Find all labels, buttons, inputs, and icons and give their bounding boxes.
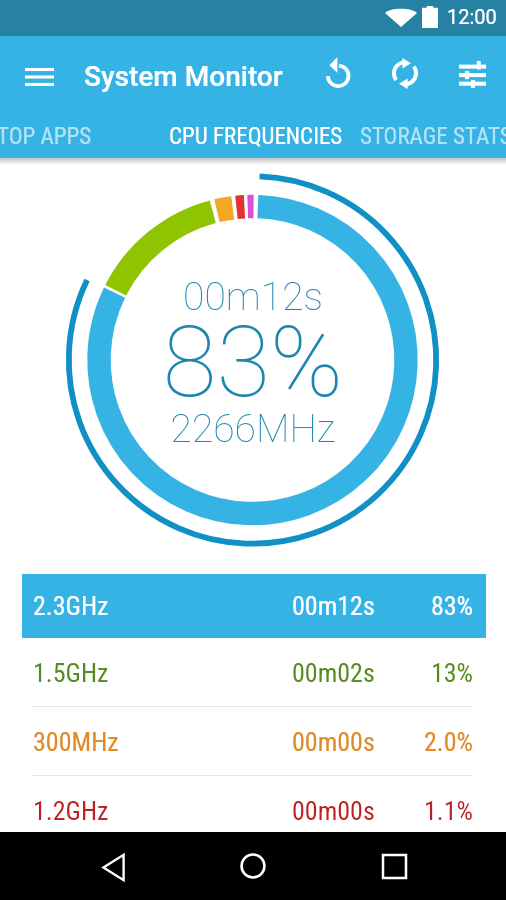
button[interactable]: Reset bbox=[308, 36, 367, 104]
staticText: 1.5GHz bbox=[33, 658, 109, 688]
staticText: 1.2GHz bbox=[33, 796, 109, 826]
button[interactable]: TOP APPS bbox=[0, 104, 93, 158]
button[interactable] bbox=[0, 638, 506, 707]
button[interactable] bbox=[0, 707, 506, 776]
button[interactable]: Recent apps bbox=[358, 832, 430, 900]
staticText: 00m00s bbox=[292, 727, 375, 757]
staticText: 2.3GHz bbox=[33, 591, 109, 621]
staticText: 00m12s bbox=[292, 591, 375, 621]
staticText: 13% bbox=[0, 658, 473, 688]
button[interactable]: Back bbox=[78, 832, 150, 900]
staticText: System Monitor bbox=[84, 60, 283, 93]
button[interactable]: Refresh bbox=[375, 36, 434, 104]
button[interactable] bbox=[0, 574, 506, 638]
button[interactable]: CPU FREQUENCIES bbox=[169, 104, 343, 158]
staticText: 1.1% bbox=[0, 796, 473, 826]
staticText: 00m02s bbox=[292, 658, 375, 688]
staticText: 00m12s bbox=[0, 274, 506, 320]
staticText: CPU FREQUENCIES bbox=[169, 123, 343, 150]
staticText: 12:00 bbox=[447, 5, 497, 28]
button[interactable]: Open navigation menu bbox=[14, 45, 65, 96]
staticText: TOP APPS bbox=[0, 123, 92, 150]
staticText: 300MHz bbox=[33, 727, 119, 757]
staticText: 83% bbox=[0, 591, 473, 621]
staticText: 2.0% bbox=[0, 727, 473, 757]
button[interactable]: Home bbox=[217, 832, 289, 900]
button[interactable]: Settings bbox=[443, 36, 502, 104]
button[interactable] bbox=[0, 776, 506, 845]
staticText: 2266MHz bbox=[0, 406, 506, 452]
button[interactable]: STORAGE STATS bbox=[356, 104, 506, 158]
staticText: 83% bbox=[0, 305, 506, 420]
staticText: STORAGE STATS bbox=[360, 123, 506, 150]
staticText: 00m00s bbox=[292, 796, 375, 826]
